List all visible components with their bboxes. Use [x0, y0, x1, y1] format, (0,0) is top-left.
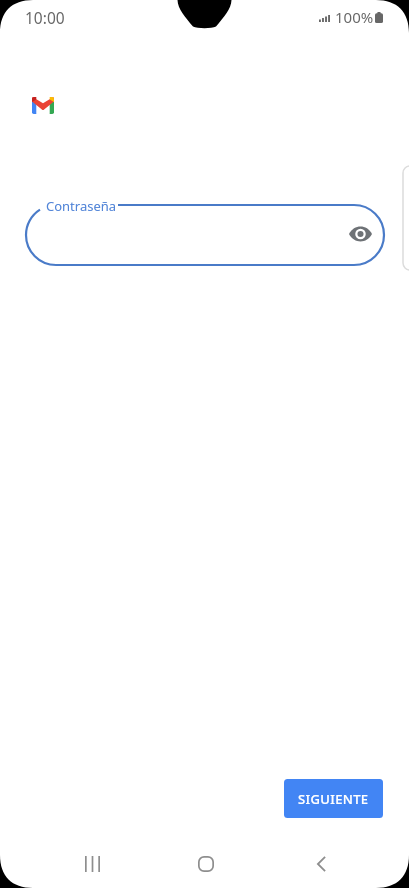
- button[interactable]: Atrás: [293, 836, 349, 888]
- staticText: 10:00: [25, 7, 65, 28]
- staticText: SIGUIENTE: [298, 790, 369, 808]
- button[interactable]: Inicio: [178, 836, 234, 888]
- button[interactable]: Recientes: [64, 836, 120, 888]
- button[interactable]: Contraseña: [26, 204, 386, 266]
- staticText: Contraseña: [46, 197, 117, 215]
- button[interactable]: SIGUIENTE: [284, 779, 383, 818]
- staticText: 100%: [335, 7, 374, 27]
- button[interactable]: Mostrar contraseña: [342, 216, 378, 252]
